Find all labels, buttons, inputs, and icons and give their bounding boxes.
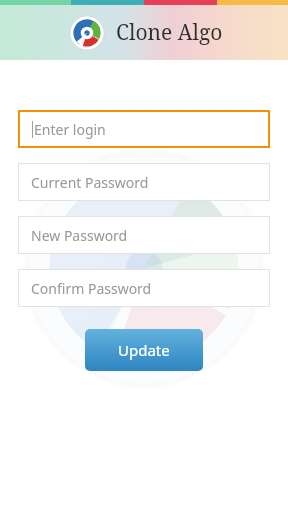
button[interactable]: Update (85, 329, 203, 371)
button[interactable]: Confirm Password (19, 270, 269, 306)
staticText: Current Password (31, 173, 149, 192)
button[interactable]: Enter login (20, 112, 268, 146)
button[interactable]: Current Password (19, 164, 269, 200)
staticText: Clone Algo (116, 18, 223, 47)
staticText: New Password (31, 226, 128, 245)
button[interactable]: New Password (19, 217, 269, 253)
staticText: Confirm Password (31, 279, 152, 298)
staticText: Update (118, 340, 170, 360)
staticText: Enter login (34, 120, 106, 139)
